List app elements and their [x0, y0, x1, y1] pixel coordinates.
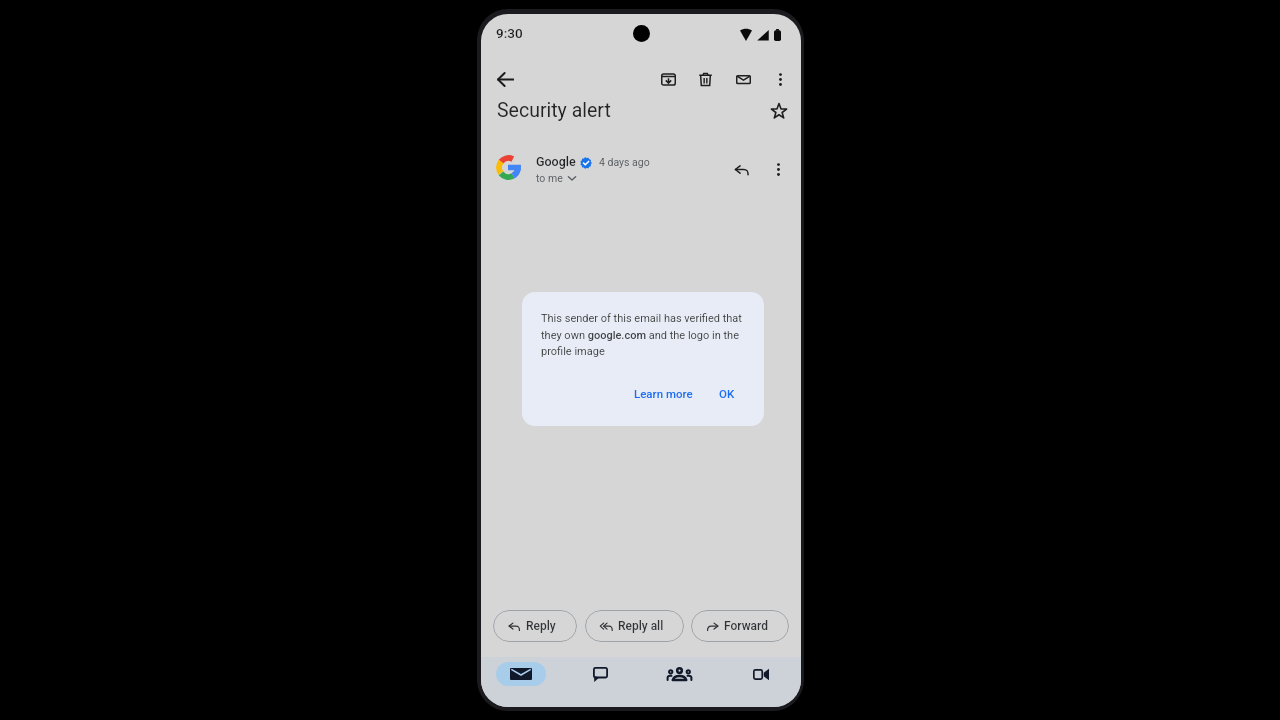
staticText: Forward [724, 619, 768, 633]
button[interactable]: Back [489, 63, 522, 96]
staticText: OK [719, 387, 735, 400]
staticText: Security alert [497, 99, 611, 122]
staticText: This sender of this email has verified t… [541, 312, 745, 357]
staticText: to me [536, 172, 563, 184]
staticText: Google [536, 154, 576, 169]
staticText: Learn more [634, 387, 693, 400]
button[interactable]: Reply [493, 610, 577, 642]
button[interactable]: OK [714, 383, 740, 404]
button[interactable]: Reply all [585, 610, 684, 642]
button[interactable]: Reply [725, 153, 758, 186]
button[interactable]: Star [762, 96, 795, 125]
button[interactable]: Mark as unread [727, 63, 760, 96]
button[interactable]: Delete [689, 63, 722, 96]
staticText: 9:30 [496, 25, 523, 41]
button[interactable]: More options [764, 63, 797, 96]
staticText: Reply all [618, 619, 664, 633]
button[interactable]: Chat [574, 658, 626, 690]
staticText: 4 days ago [599, 156, 650, 168]
button[interactable]: Learn more [629, 383, 698, 404]
button[interactable]: Mail [496, 662, 546, 686]
button[interactable]: Meet [735, 658, 787, 690]
button[interactable]: More options [762, 153, 795, 186]
staticText: Reply [526, 619, 556, 633]
button[interactable]: Forward [691, 610, 789, 642]
button[interactable]: Archive [652, 63, 685, 96]
button[interactable]: Spaces [653, 658, 705, 690]
